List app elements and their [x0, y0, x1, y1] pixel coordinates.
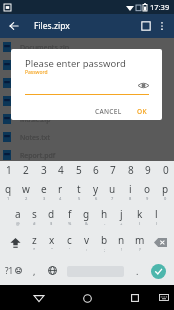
staticText: ? — [139, 247, 141, 252]
button[interactable]: Home — [79, 290, 95, 306]
button[interactable]: f — [61, 203, 78, 229]
button[interactable]: 3 — [35, 161, 52, 179]
button[interactable]: . — [129, 256, 145, 285]
button[interactable]: w — [17, 179, 34, 203]
button[interactable]: Back — [6, 18, 22, 34]
button[interactable]: Enter — [151, 264, 166, 279]
button[interactable]: OK — [131, 104, 152, 118]
button[interactable]: , — [26, 256, 42, 285]
button[interactable]: z — [26, 229, 43, 256]
button[interactable]: d — [43, 203, 60, 229]
button[interactable]: Photos.rar — [0, 74, 174, 92]
button[interactable]: s — [26, 203, 43, 229]
staticText: 8 — [129, 196, 132, 201]
button[interactable]: Hide keyboard — [157, 292, 171, 303]
staticText: m — [135, 233, 145, 247]
button[interactable]: o — [139, 179, 156, 203]
staticText: ?1 — [5, 265, 14, 276]
staticText: + — [120, 221, 123, 226]
button[interactable]: m — [131, 229, 148, 256]
staticText: 0 — [163, 163, 169, 177]
staticText: , — [33, 265, 36, 277]
staticText: Archive.zipx — [20, 61, 60, 71]
staticText: t — [77, 182, 81, 196]
button[interactable]: 7 — [104, 161, 121, 179]
staticText: 3 — [43, 196, 46, 201]
button[interactable]: k — [131, 203, 148, 229]
button[interactable]: Backspace — [150, 229, 170, 256]
staticText: 5 — [76, 163, 82, 177]
staticText: : — [86, 247, 88, 252]
staticText: s — [32, 207, 37, 221]
button[interactable]: 2 — [17, 161, 34, 179]
staticText: OK — [137, 107, 147, 116]
button[interactable]: r — [52, 179, 69, 203]
staticText: Notes.txt — [20, 133, 51, 143]
button[interactable]: Symbols — [1, 256, 26, 285]
staticText: q — [5, 182, 12, 196]
staticText: 17:39 — [150, 2, 170, 12]
staticText: c — [67, 233, 72, 247]
button[interactable]: 8 — [122, 161, 139, 179]
staticText: 1 — [7, 196, 10, 201]
staticText: ) — [156, 221, 158, 226]
button[interactable]: Backup.7z — [0, 92, 174, 110]
button[interactable]: Back — [31, 290, 47, 306]
button[interactable]: n — [113, 229, 130, 256]
button[interactable]: q — [0, 179, 17, 203]
button[interactable]: More options — [154, 18, 170, 34]
button[interactable]: g — [78, 203, 95, 229]
staticText: k — [137, 207, 143, 221]
staticText: 1 — [6, 163, 12, 177]
staticText: @ — [16, 221, 20, 226]
staticText: e — [41, 182, 47, 196]
button[interactable]: h — [96, 203, 113, 229]
button[interactable]: 9 — [139, 161, 156, 179]
staticText: 4 — [59, 196, 62, 201]
button[interactable]: 4 — [52, 161, 69, 179]
button[interactable]: Documents.zip — [0, 38, 174, 56]
button[interactable]: 6 — [87, 161, 104, 179]
button[interactable]: b — [96, 229, 113, 256]
button[interactable]: c — [61, 229, 78, 256]
button[interactable]: 1 — [0, 161, 17, 179]
button[interactable]: Report.pdf — [0, 146, 174, 164]
button[interactable]: i — [122, 179, 139, 203]
staticText: n — [118, 233, 125, 247]
button[interactable]: x — [43, 229, 60, 256]
staticText: ( — [139, 221, 141, 226]
button[interactable]: Recent apps — [127, 290, 143, 306]
staticText: p — [162, 182, 169, 196]
button[interactable]: l — [148, 203, 165, 229]
staticText: 4 — [58, 163, 64, 177]
button[interactable]: e — [35, 179, 52, 203]
staticText: x — [49, 233, 55, 247]
button[interactable]: y — [87, 179, 104, 203]
button[interactable]: Music.zip — [0, 110, 174, 128]
button[interactable]: t — [70, 179, 87, 203]
staticText: & — [85, 221, 88, 226]
button[interactable]: 0 — [157, 161, 174, 179]
button[interactable]: Select all — [138, 18, 154, 34]
button[interactable]: a — [9, 203, 26, 229]
staticText: w — [22, 182, 30, 196]
button[interactable]: 5 — [70, 161, 87, 179]
button[interactable]: Archive.zipx — [0, 56, 174, 74]
staticText: Password — [25, 69, 48, 76]
button[interactable]: p — [157, 179, 174, 203]
button[interactable]: u — [104, 179, 121, 203]
staticText: a — [15, 207, 21, 221]
staticText: " — [51, 247, 53, 252]
button[interactable]: Change keyboard — [44, 256, 60, 285]
button[interactable]: Show password — [137, 79, 150, 91]
button[interactable]: v — [78, 229, 95, 256]
button[interactable]: j — [113, 203, 130, 229]
staticText: # — [33, 221, 36, 226]
button[interactable]: Shift — [5, 229, 25, 256]
staticText: v — [84, 233, 90, 247]
staticText: i — [129, 182, 132, 196]
button[interactable]: CANCEL — [88, 104, 128, 118]
button[interactable]: Notes.txt — [0, 128, 174, 146]
staticText: 9 — [145, 163, 151, 177]
